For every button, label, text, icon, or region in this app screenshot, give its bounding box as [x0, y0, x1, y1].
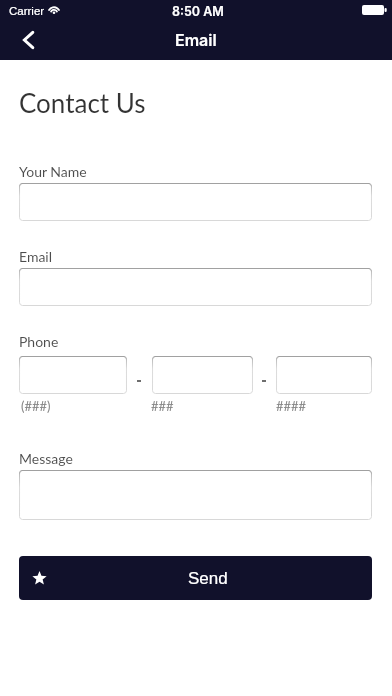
- button[interactable]: Send: [19, 556, 372, 600]
- staticText: Email: [175, 30, 217, 49]
- button[interactable]: [276, 356, 372, 394]
- staticText: (###): [21, 398, 51, 414]
- staticText: Contact Us: [19, 87, 146, 118]
- button[interactable]: [19, 356, 127, 394]
- staticText: Phone: [19, 333, 59, 350]
- staticText: Send: [188, 569, 228, 588]
- button[interactable]: [19, 470, 372, 520]
- staticText: ###: [151, 398, 174, 414]
- staticText: ####: [276, 398, 307, 414]
- button[interactable]: [19, 183, 372, 221]
- staticText: Your Name: [19, 163, 87, 180]
- staticText: Carrier: [9, 5, 45, 18]
- button[interactable]: [19, 268, 372, 306]
- staticText: Email: [19, 248, 53, 265]
- button[interactable]: [152, 356, 253, 394]
- button[interactable]: Back: [16, 29, 40, 51]
- staticText: 8:50 AM: [172, 4, 224, 19]
- staticText: Message: [19, 450, 73, 467]
